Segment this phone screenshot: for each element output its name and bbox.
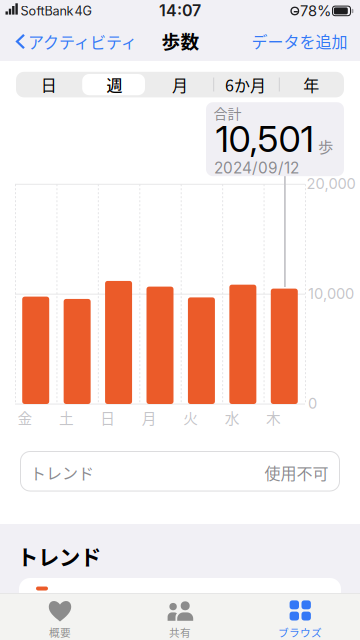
button[interactable]: トレンド 使用不可 <box>20 451 340 491</box>
button[interactable] <box>240 593 360 640</box>
staticText: 14:07 <box>159 1 201 20</box>
button[interactable]: 日 <box>16 72 82 97</box>
staticText: 水 <box>225 407 240 428</box>
staticText: 概要 <box>49 624 71 640</box>
staticText: 使用不可 <box>264 461 328 484</box>
staticText: 土 <box>59 407 74 428</box>
staticText: ブラウズ <box>278 624 322 640</box>
staticText: 4G <box>74 3 91 19</box>
staticText: 金 <box>17 407 32 428</box>
button[interactable] <box>120 593 240 640</box>
staticText: アクティビティ <box>28 30 137 53</box>
staticText: トレンド <box>17 541 101 571</box>
button[interactable]: 年 <box>278 72 344 97</box>
button[interactable]: 週 <box>82 72 147 97</box>
staticText: 78% <box>300 2 331 20</box>
button[interactable]: データを追加 <box>244 24 354 58</box>
staticText: 日 <box>41 73 57 96</box>
staticText: データを追加 <box>251 29 347 53</box>
staticText: 共有 <box>169 624 191 640</box>
staticText: 歩 <box>318 135 333 157</box>
staticText: 週 <box>106 73 122 96</box>
staticText: 年 <box>303 73 319 96</box>
button[interactable] <box>0 593 120 640</box>
staticText: SoftBank <box>20 3 73 19</box>
staticText: 木 <box>266 407 281 428</box>
staticText: 10,000 <box>308 285 354 302</box>
staticText: 月 <box>172 73 188 96</box>
staticText: 合計 <box>213 103 241 123</box>
staticText: 月 <box>142 407 157 428</box>
button[interactable]: アクティビティ <box>11 24 141 58</box>
staticText: 2024/09/12 <box>214 159 299 177</box>
staticText: トレンド <box>30 461 94 484</box>
staticText: 火 <box>183 407 198 428</box>
staticText: 歩数 <box>161 27 199 54</box>
staticText: 20,000 <box>306 175 355 192</box>
button[interactable]: 月 <box>147 72 213 97</box>
staticText: 10,501 <box>215 117 313 161</box>
staticText: 0 <box>308 395 317 412</box>
staticText: 日 <box>100 407 115 428</box>
button[interactable]: 6か月 <box>213 72 278 97</box>
staticText: 6か月 <box>225 73 266 96</box>
